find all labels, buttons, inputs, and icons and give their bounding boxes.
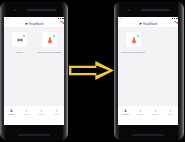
button[interactable]: More xyxy=(49,106,64,116)
staticText: Environmental monitoring xyxy=(121,51,146,54)
staticText: Devices xyxy=(137,113,144,116)
staticText: Patients xyxy=(122,113,130,116)
button[interactable]: Reports xyxy=(148,106,163,116)
staticText: Environmental monitoring xyxy=(37,51,62,54)
staticText: Reports xyxy=(152,113,159,116)
staticText: HospiBoard xyxy=(143,22,158,25)
button[interactable] xyxy=(12,32,27,47)
button[interactable]: Devices xyxy=(19,106,34,116)
button[interactable]: Patients xyxy=(118,106,133,116)
staticText: Reports xyxy=(38,113,45,116)
button[interactable]: Devices xyxy=(133,106,148,116)
button[interactable]: More xyxy=(163,106,178,116)
button[interactable]: Patients xyxy=(4,106,19,116)
staticText: More xyxy=(54,113,59,116)
staticText: Devices xyxy=(23,113,30,116)
button[interactable] xyxy=(42,32,57,47)
button[interactable]: Reports xyxy=(34,106,49,116)
staticText: HospiBoard xyxy=(29,22,44,25)
staticText: Sensors xyxy=(15,51,23,54)
staticText: More xyxy=(168,113,173,116)
button[interactable] xyxy=(126,32,141,47)
staticText: Patients xyxy=(8,113,16,116)
